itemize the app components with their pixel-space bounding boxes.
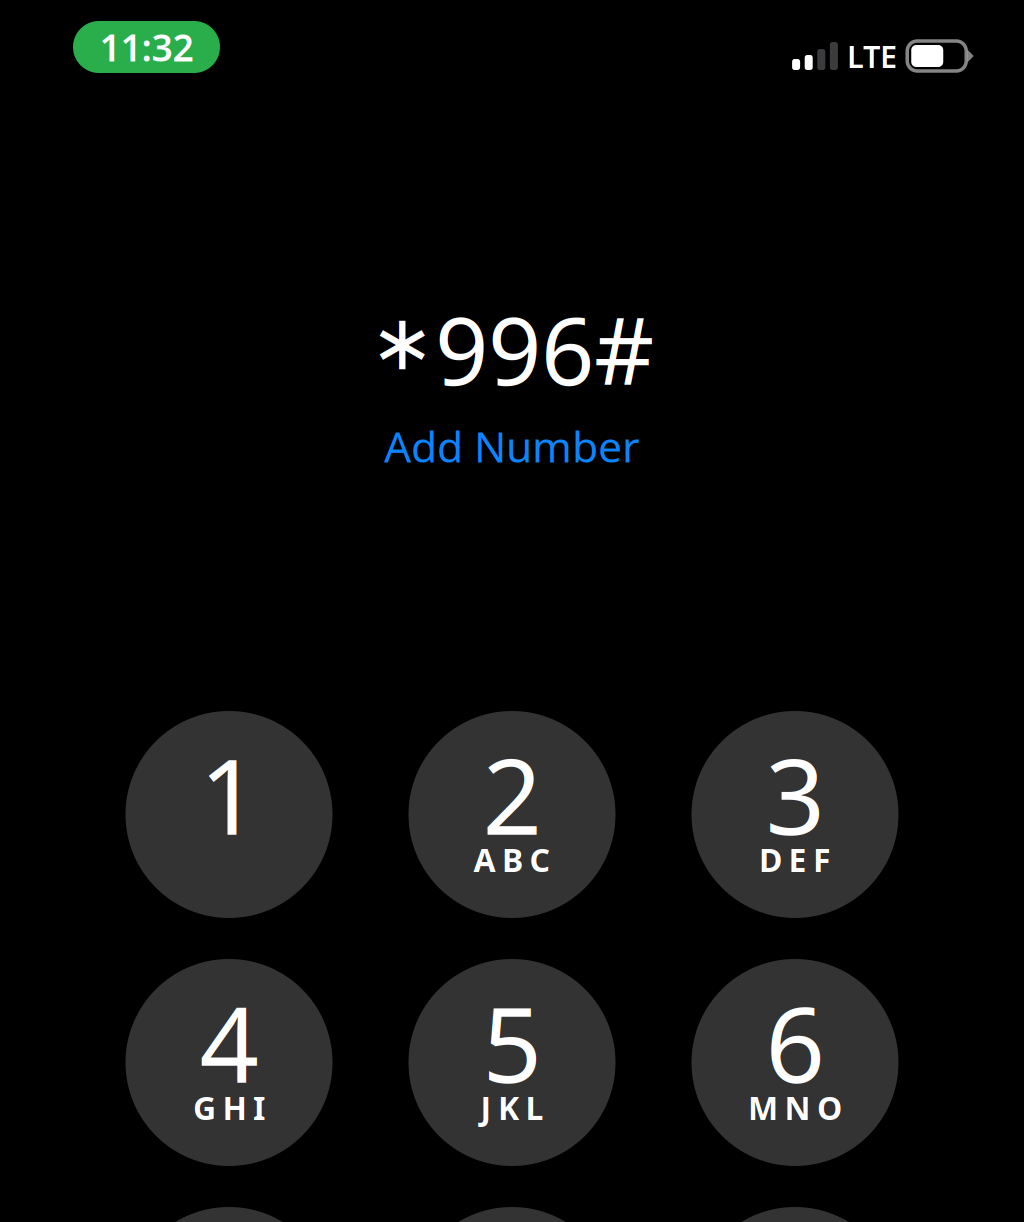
button[interactable]: Return to call, 11:32 (73, 21, 220, 73)
staticText: 4 (199, 973, 258, 1111)
button[interactable]: 2 ABC (408, 711, 615, 918)
button[interactable]: 9 WXYZ (691, 1207, 898, 1222)
staticText: LTE (847, 36, 897, 76)
staticText: 3 (765, 725, 824, 863)
staticText: ∗996# (370, 287, 654, 411)
button[interactable]: 3 DEF (691, 711, 898, 918)
button[interactable]: 4 GHI (125, 959, 332, 1166)
staticText: GHI (193, 1086, 265, 1129)
staticText: 11:32 (99, 22, 193, 72)
button[interactable]: 5 JKL (408, 959, 615, 1166)
staticText: 6 (765, 973, 824, 1111)
button[interactable]: 7 PQRS (125, 1207, 332, 1222)
staticText: JKL (480, 1086, 543, 1129)
staticText: 1 (199, 725, 258, 863)
button[interactable]: 8 TUV (408, 1207, 615, 1222)
staticText: MNO (748, 1086, 842, 1129)
staticText: 2 (482, 725, 541, 863)
staticText: 5 (482, 973, 541, 1111)
button[interactable]: 6 MNO (691, 959, 898, 1166)
staticText: ABC (473, 838, 550, 881)
staticText: DEF (759, 838, 831, 881)
button[interactable]: 1 (125, 711, 332, 918)
button[interactable]: Add Number (384, 425, 640, 467)
staticText: Add Number (384, 418, 640, 474)
